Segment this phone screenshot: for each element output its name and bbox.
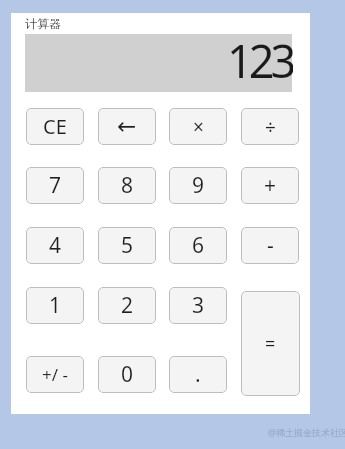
staticText: +/ - [42,363,68,386]
button[interactable]: 4 [26,227,84,264]
button[interactable]: 2 [98,287,156,324]
button[interactable]: 7 [26,167,84,204]
staticText: 6 [192,231,205,260]
button[interactable]: 9 [169,167,227,204]
button[interactable]: 5 [98,227,156,264]
button[interactable]: +/ - [26,356,84,393]
button[interactable]: = [241,291,300,396]
staticText: 9 [192,171,205,200]
button[interactable]: × [169,108,227,145]
button[interactable]: + [241,167,299,204]
staticText: 计算器 [25,16,61,31]
staticText: ÷ [265,114,276,140]
button[interactable]: 0 [98,356,156,393]
staticText: @稀土掘金技术社区 [268,426,345,438]
button[interactable]: CE [26,108,84,145]
staticText: . [195,360,201,389]
staticText: - [267,231,274,260]
button[interactable]: 1 [26,287,84,324]
staticText: 4 [49,231,62,260]
button[interactable]: ÷ [241,108,299,145]
staticText: 7 [49,171,62,200]
button[interactable]: 8 [98,167,156,204]
staticText: 123 [227,30,293,88]
staticText: + [264,171,277,200]
staticText: 2 [121,291,134,320]
staticText: ← [117,113,137,140]
staticText: 3 [192,291,205,320]
button[interactable]: ← [98,108,156,145]
button[interactable]: . [169,356,227,393]
staticText: × [193,114,204,140]
button[interactable]: 3 [169,287,227,324]
staticText: 5 [121,231,134,260]
staticText: 8 [121,171,134,200]
staticText: CE [43,113,67,140]
staticText: 0 [121,360,134,389]
button[interactable]: 6 [169,227,227,264]
button[interactable]: - [241,227,299,264]
staticText: 1 [49,291,62,320]
staticText: = [265,331,276,356]
